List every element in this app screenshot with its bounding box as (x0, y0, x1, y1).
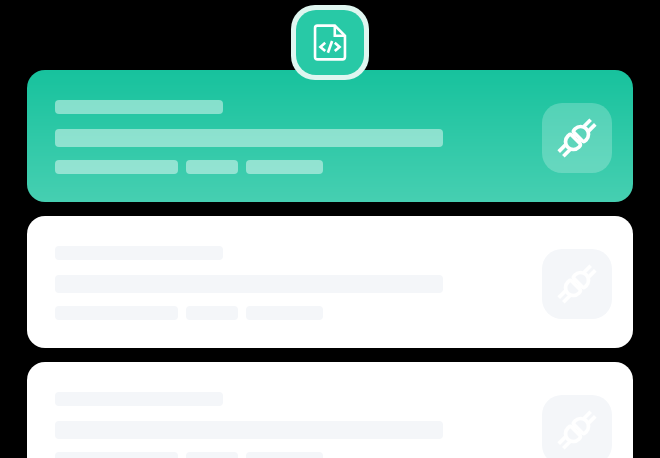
button[interactable] (27, 362, 633, 458)
button[interactable]: Connect integration (542, 103, 612, 173)
button[interactable]: Connect integration (542, 249, 612, 319)
button[interactable] (27, 70, 633, 202)
button[interactable]: Connect integration (542, 395, 612, 458)
button[interactable] (27, 216, 633, 348)
button[interactable]: Code snippet (291, 5, 369, 80)
